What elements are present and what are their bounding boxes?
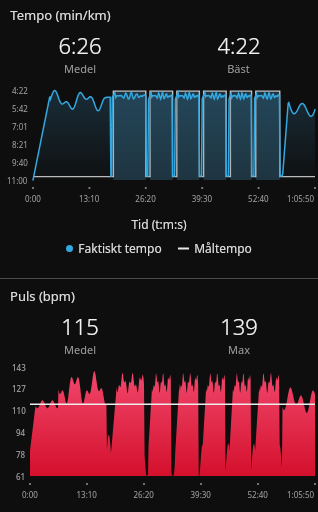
staticText: Medel [64,342,96,357]
staticText: 6:26 [58,30,102,60]
staticText: Faktiskt tempo [78,240,162,256]
staticText: Max [228,342,250,357]
button[interactable]: Puls (bpm) [0,279,318,512]
button[interactable]: Faktiskt tempo [0,240,318,256]
staticText: Tempo (min/km) [10,6,111,24]
staticText: Puls (bpm) [10,287,75,305]
staticText: 115 [61,311,99,341]
other: Pulsdiagram [0,361,318,506]
staticText: Bäst [227,61,250,76]
staticText: Medel [64,61,96,76]
staticText: Måltempo [194,240,252,256]
button[interactable]: 115 [0,311,159,357]
button[interactable]: Tempo (min/km) [0,0,318,278]
button[interactable]: 139 [159,311,318,357]
button[interactable]: 6:26 [0,30,159,76]
staticText: 4:22 [217,30,261,60]
staticText: 139 [220,311,258,341]
staticText: Tid (t:m:s) [131,216,187,232]
button[interactable]: 4:22 [159,30,318,76]
